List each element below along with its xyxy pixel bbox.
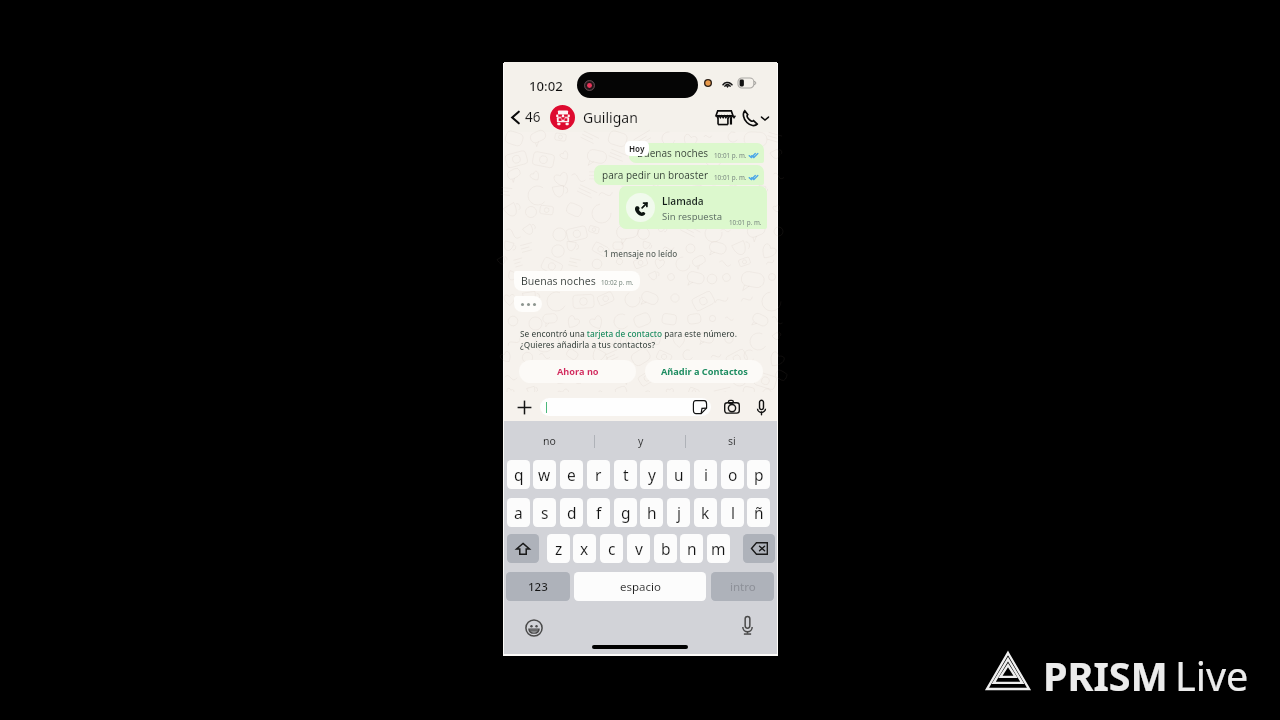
staticText: no: [543, 434, 556, 448]
button[interactable]: k: [694, 498, 717, 527]
button[interactable]: a: [507, 498, 530, 527]
button[interactable]: Emoji keyboard: [524, 618, 544, 638]
button[interactable]: 46: [504, 108, 545, 126]
button[interactable]: Camera: [722, 397, 742, 417]
button[interactable]: z: [547, 534, 570, 563]
staticText: ñ: [754, 502, 764, 523]
staticText: i: [704, 464, 708, 485]
button[interactable]: l: [721, 498, 744, 527]
staticText: d: [567, 502, 577, 523]
staticText: t: [623, 464, 629, 485]
button[interactable]: w: [533, 460, 556, 489]
button[interactable]: s: [533, 498, 556, 527]
staticText: 10:01 p. m.: [714, 173, 747, 182]
staticText: n: [687, 538, 697, 559]
button[interactable]: ñ: [747, 498, 770, 527]
button[interactable]: Backspace: [743, 534, 775, 563]
staticText: para pedir un broaster: [602, 168, 709, 182]
button[interactable]: o: [721, 460, 744, 489]
button[interactable]: espacio: [574, 572, 706, 601]
button[interactable]: Voice message: [752, 398, 770, 416]
staticText: Se encontró una tarjeta de contacto para…: [520, 328, 737, 350]
button[interactable]: Buenas noches: [629, 143, 764, 163]
button[interactable]: y: [640, 460, 663, 489]
staticText: espacio: [620, 579, 661, 595]
button[interactable]: t: [614, 460, 637, 489]
staticText: e: [567, 464, 576, 485]
staticText: j: [677, 502, 681, 523]
staticText: y: [648, 464, 656, 485]
staticText: o: [728, 464, 738, 485]
staticText: y: [638, 434, 644, 448]
button[interactable]: x: [573, 534, 596, 563]
button[interactable]: g: [614, 498, 637, 527]
staticText: Llamada: [662, 194, 704, 208]
button[interactable]: Shift: [507, 534, 539, 563]
button[interactable]: i: [694, 460, 717, 489]
button[interactable]: p: [747, 460, 770, 489]
staticText: Live: [1175, 649, 1249, 703]
staticText: l: [731, 502, 735, 523]
button[interactable]: q: [507, 460, 530, 489]
staticText: a: [514, 502, 523, 523]
button[interactable]: intro: [711, 572, 774, 601]
button[interactable]: Business catalog: [712, 106, 737, 129]
button[interactable]: Call: [739, 109, 777, 127]
button[interactable]: r: [587, 460, 610, 489]
button[interactable]: Dictation: [736, 614, 758, 636]
button[interactable]: n: [680, 534, 703, 563]
staticText: f: [596, 502, 602, 523]
button[interactable]: e: [560, 460, 583, 489]
staticText: k: [701, 502, 710, 523]
staticText: 46: [525, 108, 541, 126]
staticText: r: [595, 464, 602, 485]
button[interactable]: y: [595, 430, 686, 452]
button[interactable]: 123: [506, 572, 570, 601]
button[interactable]: v: [627, 534, 650, 563]
staticText: PRISM: [1043, 649, 1168, 703]
staticText: si: [728, 434, 736, 448]
staticText: q: [514, 464, 524, 485]
staticText: Sin respuesta: [662, 210, 723, 223]
staticText: Buenas noches: [637, 146, 709, 160]
button[interactable]: Ahora no: [519, 360, 636, 383]
button[interactable]: c: [600, 534, 623, 563]
button[interactable]: no: [504, 430, 595, 452]
staticText: 10:01 p. m.: [729, 218, 762, 227]
button[interactable]: j: [667, 498, 690, 527]
staticText: x: [580, 538, 589, 559]
button[interactable]: Llamada: [619, 186, 767, 229]
staticText: 123: [528, 579, 548, 595]
staticText: v: [635, 538, 643, 559]
button[interactable]: d: [560, 498, 583, 527]
button[interactable]: Attach: [515, 398, 533, 416]
staticText: s: [541, 502, 549, 523]
staticText: u: [674, 464, 684, 485]
staticText: 10:01 p. m.: [714, 151, 747, 160]
staticText: h: [647, 502, 657, 523]
staticText: w: [538, 464, 551, 485]
staticText: intro: [730, 579, 756, 595]
button[interactable]: h: [640, 498, 663, 527]
staticText: Hoy: [629, 143, 645, 154]
staticText: m: [711, 538, 726, 559]
button[interactable]: m: [707, 534, 730, 563]
staticText: 10:02: [529, 77, 563, 95]
staticText: p: [754, 464, 764, 485]
button[interactable]: Añadir a Contactos: [645, 360, 763, 383]
button[interactable]: Buenas noches: [514, 271, 640, 291]
button[interactable]: u: [667, 460, 690, 489]
button[interactable]: f: [587, 498, 610, 527]
button[interactable]: para pedir un broaster: [594, 165, 764, 185]
staticText: Añadir a Contactos: [661, 365, 748, 378]
button[interactable]: b: [654, 534, 677, 563]
staticText: b: [661, 538, 671, 559]
staticText: Guiligan: [583, 108, 638, 127]
staticText: 10:02 p. m.: [601, 278, 634, 287]
staticText: c: [608, 538, 616, 559]
button[interactable]: Guiligan: [550, 105, 638, 130]
button[interactable]: [540, 398, 711, 416]
staticText: Ahora no: [557, 365, 599, 378]
staticText: Buenas noches: [521, 274, 596, 288]
button[interactable]: si: [686, 430, 777, 452]
